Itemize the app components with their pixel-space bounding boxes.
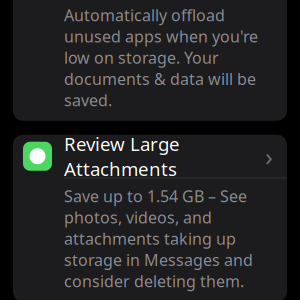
- staticText: Automatically offload unused apps when y…: [64, 4, 258, 111]
- button[interactable]: Review Large Attachments: [13, 135, 287, 178]
- staticText: Review Large Attachments: [64, 131, 180, 181]
- staticText: Save up to 1.54 GB – See photos, videos,…: [64, 185, 253, 292]
- staticText: ›: [265, 139, 273, 173]
